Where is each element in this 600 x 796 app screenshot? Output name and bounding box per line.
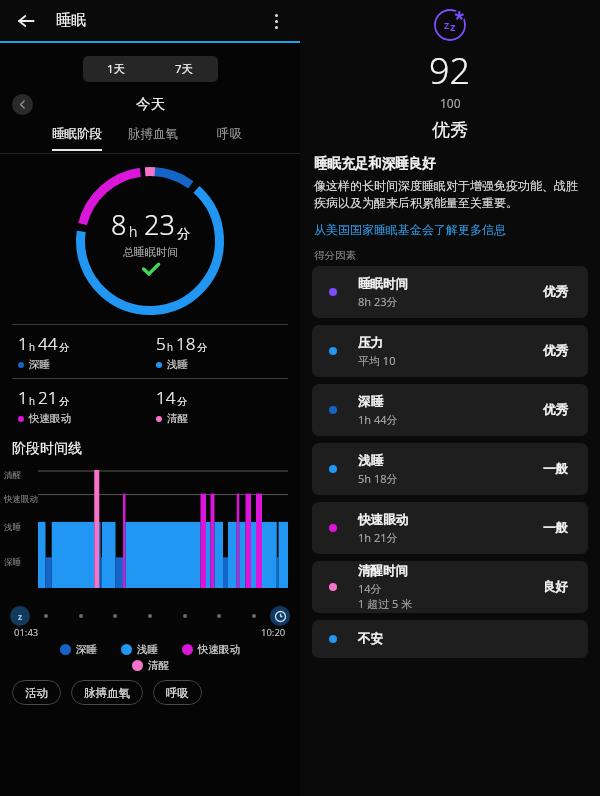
staticText: 总睡眠时间 (123, 245, 178, 259)
button[interactable]: 1 (12, 379, 150, 432)
staticText: h (129, 222, 138, 241)
staticText: 14 (156, 386, 176, 409)
staticText: 深睡 (358, 394, 383, 410)
staticText: 活动 (25, 686, 48, 700)
staticText: 18 (176, 332, 196, 355)
staticText: 01:43 (14, 626, 39, 639)
staticText: 1 (18, 386, 28, 409)
staticText: 优秀 (543, 343, 568, 359)
staticText: 浅睡 (358, 453, 383, 469)
staticText: 平均 10 (358, 353, 396, 368)
button[interactable]: 深睡 (312, 384, 588, 436)
staticText: 压力 (358, 335, 383, 351)
button[interactable]: 睡眠阶段 (50, 120, 104, 151)
staticText: 分 (177, 225, 190, 241)
button[interactable]: 脉搏血氧 (71, 680, 143, 705)
staticText: 呼吸 (166, 686, 189, 700)
staticText: 快速眼动 (358, 512, 408, 528)
button[interactable]: Previous day (12, 94, 33, 115)
button[interactable]: 浅睡 (312, 443, 588, 495)
staticText: 深睡 (76, 643, 97, 656)
other: Alarm (270, 606, 290, 626)
staticText: 浅睡 (167, 358, 188, 371)
staticText: 优秀 (543, 284, 568, 300)
staticText: 优秀 (543, 402, 568, 418)
button[interactable]: 脉搏血氧 (126, 120, 180, 151)
staticText: 深睡 (4, 557, 21, 568)
button[interactable]: 清醒时间 (312, 561, 588, 613)
staticText: 分 (177, 395, 187, 408)
staticText: 1 (18, 332, 28, 355)
staticText: 分 (197, 341, 207, 354)
staticText: 不安 (358, 631, 383, 647)
staticText: 21 (38, 386, 58, 409)
staticText: z (450, 19, 456, 34)
button[interactable]: 不安 (312, 620, 588, 658)
staticText: 睡眠 (56, 11, 86, 30)
button[interactable]: 压力 (312, 325, 588, 377)
staticText: 1h 21分 (358, 530, 398, 545)
button[interactable]: 从美国国家睡眠基金会了解更多信息 (314, 222, 506, 237)
staticText: 8h 23分 (358, 294, 398, 309)
staticText: 深睡 (29, 358, 50, 371)
staticText: h (167, 340, 173, 354)
staticText: 良好 (543, 579, 568, 595)
staticText: 分 (59, 395, 69, 408)
button[interactable]: 7天 (150, 56, 218, 82)
staticText: 睡眠阶段 (52, 126, 102, 142)
staticText: 23 (144, 206, 175, 243)
staticText: 100 (440, 95, 461, 111)
staticText: Z (444, 19, 450, 31)
staticText: z (18, 611, 22, 622)
button[interactable]: More options (260, 5, 292, 37)
staticText: h (29, 340, 35, 354)
staticText: 像这样的长时间深度睡眠对于增强免疫功能、战胜疾病以及为醒来后积累能量至关重要。 (314, 178, 586, 210)
button[interactable]: 呼吸 (153, 680, 202, 705)
staticText: 5 (156, 332, 166, 355)
button[interactable]: 14 (150, 379, 288, 432)
staticText: 清醒 (167, 412, 188, 425)
staticText: 快速眼动 (198, 643, 240, 656)
button[interactable]: 快速眼动 (312, 502, 588, 554)
staticText: 脉搏血氧 (84, 686, 130, 700)
staticText: 1 超过 5 米 (358, 596, 413, 611)
staticText: 7天 (175, 61, 194, 77)
staticText: 一般 (543, 520, 568, 536)
button[interactable]: 5 (150, 325, 288, 378)
button[interactable]: 活动 (12, 680, 61, 705)
staticText: 5h 18分 (358, 471, 398, 486)
staticText: h (29, 394, 35, 408)
staticText: 14分 (358, 581, 382, 596)
staticText: 浅睡 (137, 643, 158, 656)
button[interactable]: 呼吸 (202, 120, 256, 151)
staticText: 呼吸 (217, 126, 242, 142)
staticText: 浅睡 (4, 522, 21, 533)
staticText: 10:20 (261, 626, 286, 639)
staticText: 得分因素 (314, 249, 356, 262)
staticText: 睡眠时间 (358, 276, 408, 292)
staticText: 1h 44分 (358, 412, 398, 427)
staticText: 脉搏血氧 (128, 126, 178, 142)
staticText: 阶段时间线 (12, 440, 82, 458)
staticText: 优秀 (432, 119, 468, 142)
staticText: 快速眼动 (29, 412, 71, 425)
button[interactable]: Back (10, 5, 42, 37)
staticText: 清醒 (4, 470, 21, 481)
staticText: 清醒时间 (358, 563, 408, 579)
staticText: 一般 (543, 461, 568, 477)
staticText: 快速眼动 (4, 494, 38, 505)
staticText: 清醒 (148, 659, 169, 672)
staticText: 今天 (136, 95, 165, 113)
staticText: 1天 (107, 61, 126, 77)
button[interactable]: 1天 (83, 56, 150, 82)
staticText: 92 (429, 46, 471, 95)
staticText: 分 (59, 341, 69, 354)
button[interactable]: 睡眠时间 (312, 266, 588, 318)
button[interactable]: 1 (12, 325, 150, 378)
staticText: 睡眠充足和深睡良好 (314, 155, 436, 172)
staticText: 8 (111, 206, 127, 243)
staticText: 44 (38, 332, 58, 355)
